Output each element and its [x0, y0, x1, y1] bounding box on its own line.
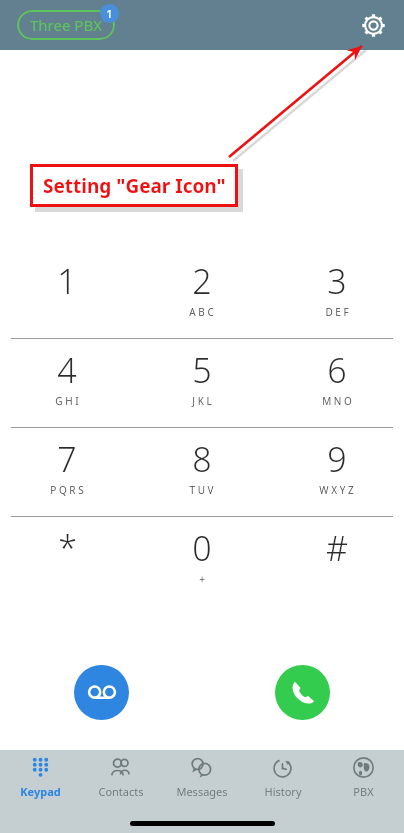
staticText: 6	[327, 347, 347, 393]
button[interactable]: 3	[269, 250, 404, 338]
staticText: 8	[192, 436, 212, 482]
button[interactable]: 2	[134, 250, 269, 338]
button[interactable]: Keypad	[0, 750, 80, 804]
staticText: +	[199, 572, 205, 586]
button[interactable]: 1	[0, 250, 134, 338]
staticText: 2	[192, 258, 212, 304]
staticText: G H I	[55, 394, 79, 408]
button[interactable]: *	[0, 517, 134, 605]
staticText: 1	[106, 6, 113, 21]
staticText: Messages	[176, 784, 228, 799]
staticText: 9	[327, 436, 347, 482]
button[interactable]: #	[269, 517, 404, 605]
staticText: W X Y Z	[319, 483, 354, 497]
staticText: Contacts	[98, 784, 144, 799]
staticText: 3	[327, 258, 347, 304]
staticText: 7	[57, 436, 77, 482]
button[interactable]: Voicemail	[74, 665, 129, 720]
button[interactable]: Messages	[161, 750, 242, 804]
button[interactable]: PBX	[323, 750, 404, 804]
staticText: P Q R S	[50, 483, 84, 497]
button[interactable]: 7	[0, 428, 134, 516]
button[interactable]: 8	[134, 428, 269, 516]
staticText: History	[264, 784, 302, 799]
staticText: J K L	[192, 394, 212, 408]
staticText: T U V	[189, 483, 214, 497]
staticText: Three PBX	[30, 15, 102, 35]
staticText: #	[326, 525, 348, 571]
staticText: 0	[192, 525, 212, 571]
button[interactable]: Call	[275, 665, 330, 720]
button[interactable]: 0	[134, 517, 269, 605]
staticText: 4	[57, 347, 77, 393]
staticText: 5	[192, 347, 212, 393]
button[interactable]: History	[242, 750, 323, 804]
button[interactable]: 5	[134, 339, 269, 427]
staticText: D E F	[325, 305, 349, 319]
button[interactable]: 6	[269, 339, 404, 427]
staticText: M N O	[322, 394, 352, 408]
staticText: PBX	[353, 784, 374, 799]
button[interactable]: 4	[0, 339, 134, 427]
staticText: 1	[57, 258, 77, 304]
button[interactable]: Three PBX	[17, 10, 115, 40]
staticText: Keypad	[20, 784, 61, 799]
button[interactable]: Settings	[355, 7, 391, 43]
staticText: A B C	[189, 305, 214, 319]
staticText: Setting "Gear Icon"	[43, 173, 226, 199]
button[interactable]: Contacts	[80, 750, 161, 804]
staticText: *	[58, 525, 77, 571]
button[interactable]: 9	[269, 428, 404, 516]
